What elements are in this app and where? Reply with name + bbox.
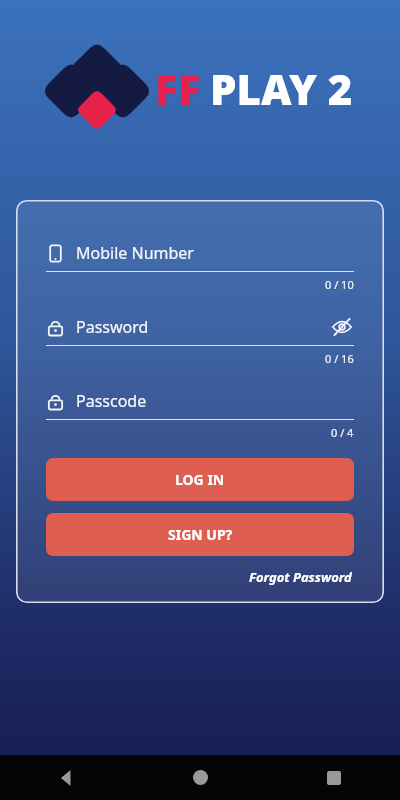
- staticText: PLAY 2: [210, 60, 353, 117]
- staticText: Password: [76, 316, 149, 338]
- button[interactable]: Forgot Password: [247, 566, 354, 588]
- staticText: SIGN UP?: [168, 525, 233, 544]
- button[interactable]: Mobile Number: [46, 238, 354, 292]
- staticText: 0 / 10: [325, 277, 354, 292]
- button[interactable]: Show password: [330, 315, 354, 339]
- button[interactable]: Back: [0, 755, 134, 800]
- button[interactable]: LOG IN: [46, 458, 354, 501]
- button[interactable]: Recent apps: [267, 755, 400, 800]
- staticText: Passcode: [76, 390, 147, 412]
- staticText: FF: [155, 60, 201, 117]
- staticText: Forgot Password: [249, 568, 352, 586]
- button[interactable]: Password: [46, 312, 354, 366]
- staticText: Mobile Number: [76, 242, 194, 264]
- button[interactable]: SIGN UP?: [46, 513, 354, 556]
- button[interactable]: Passcode: [46, 386, 354, 440]
- staticText: 0 / 16: [325, 351, 354, 366]
- button[interactable]: Home: [134, 755, 267, 800]
- staticText: 0 / 4: [331, 425, 354, 440]
- staticText: LOG IN: [175, 470, 225, 489]
